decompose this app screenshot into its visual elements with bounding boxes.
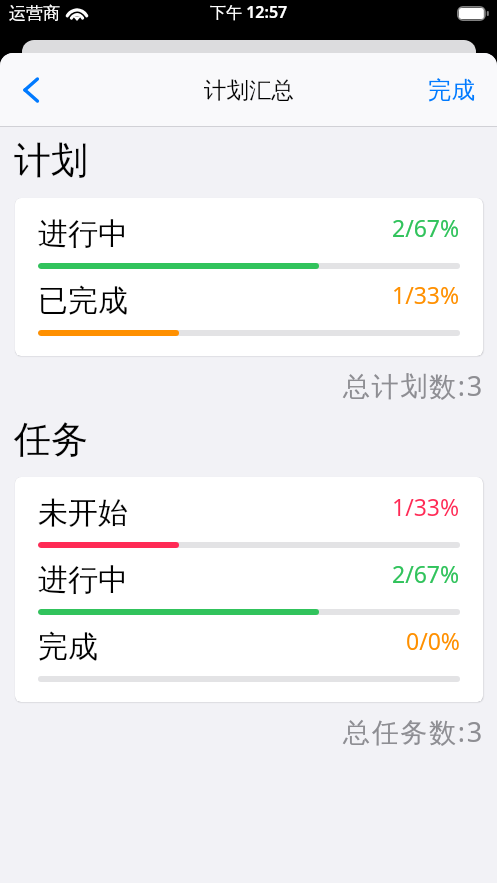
staticText: 已完成 (38, 282, 128, 320)
staticText: 1/33% (392, 491, 460, 522)
staticText: 总任务数:3 (343, 713, 484, 750)
staticText: 完成 (38, 628, 98, 666)
button[interactable]: 已完成 (15, 282, 483, 320)
button[interactable]: 进行中 (15, 561, 483, 599)
staticText: 完成 (428, 75, 475, 105)
staticText: 计划 (14, 137, 88, 184)
button[interactable]: 未开始 (15, 494, 483, 532)
button[interactable]: 完成 (15, 628, 483, 666)
staticText: 1/33% (392, 279, 460, 310)
staticText: 进行中 (38, 215, 128, 253)
button[interactable]: 完成 (406, 63, 497, 117)
staticText: 运营商 (9, 3, 60, 24)
staticText: 进行中 (38, 561, 128, 599)
staticText: 2/67% (392, 558, 460, 589)
staticText: 未开始 (38, 494, 128, 532)
staticText: 0/0% (406, 625, 460, 656)
button[interactable]: Back (8, 67, 54, 113)
staticText: 下午 12:57 (210, 1, 288, 23)
staticText: 任务 (14, 416, 88, 463)
button[interactable]: 进行中 (15, 215, 483, 253)
staticText: 总计划数:3 (343, 367, 484, 404)
staticText: 2/67% (392, 212, 460, 243)
staticText: 计划汇总 (204, 76, 294, 104)
